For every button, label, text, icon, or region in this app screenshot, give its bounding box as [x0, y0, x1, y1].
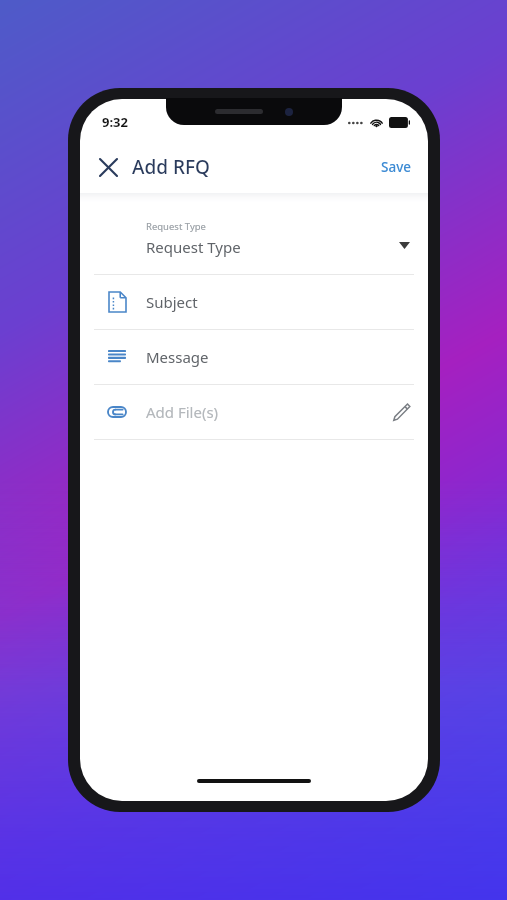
staticText: Add File(s): [146, 402, 219, 422]
button[interactable]: Add File(s): [80, 385, 428, 439]
staticText: Request Type: [146, 220, 206, 233]
button[interactable]: Save: [365, 148, 428, 186]
button[interactable]: Edit: [384, 395, 418, 429]
staticText: 9:32: [102, 113, 128, 131]
button[interactable]: Close: [88, 147, 128, 187]
staticText: Add RFQ: [132, 154, 210, 180]
button[interactable]: Request Type: [80, 202, 428, 274]
staticText: Subject: [146, 292, 198, 312]
button[interactable]: Subject: [80, 275, 428, 329]
staticText: Message: [146, 347, 209, 367]
staticText: Save: [381, 158, 412, 176]
staticText: Request Type: [146, 237, 241, 257]
button[interactable]: Message: [80, 330, 428, 384]
